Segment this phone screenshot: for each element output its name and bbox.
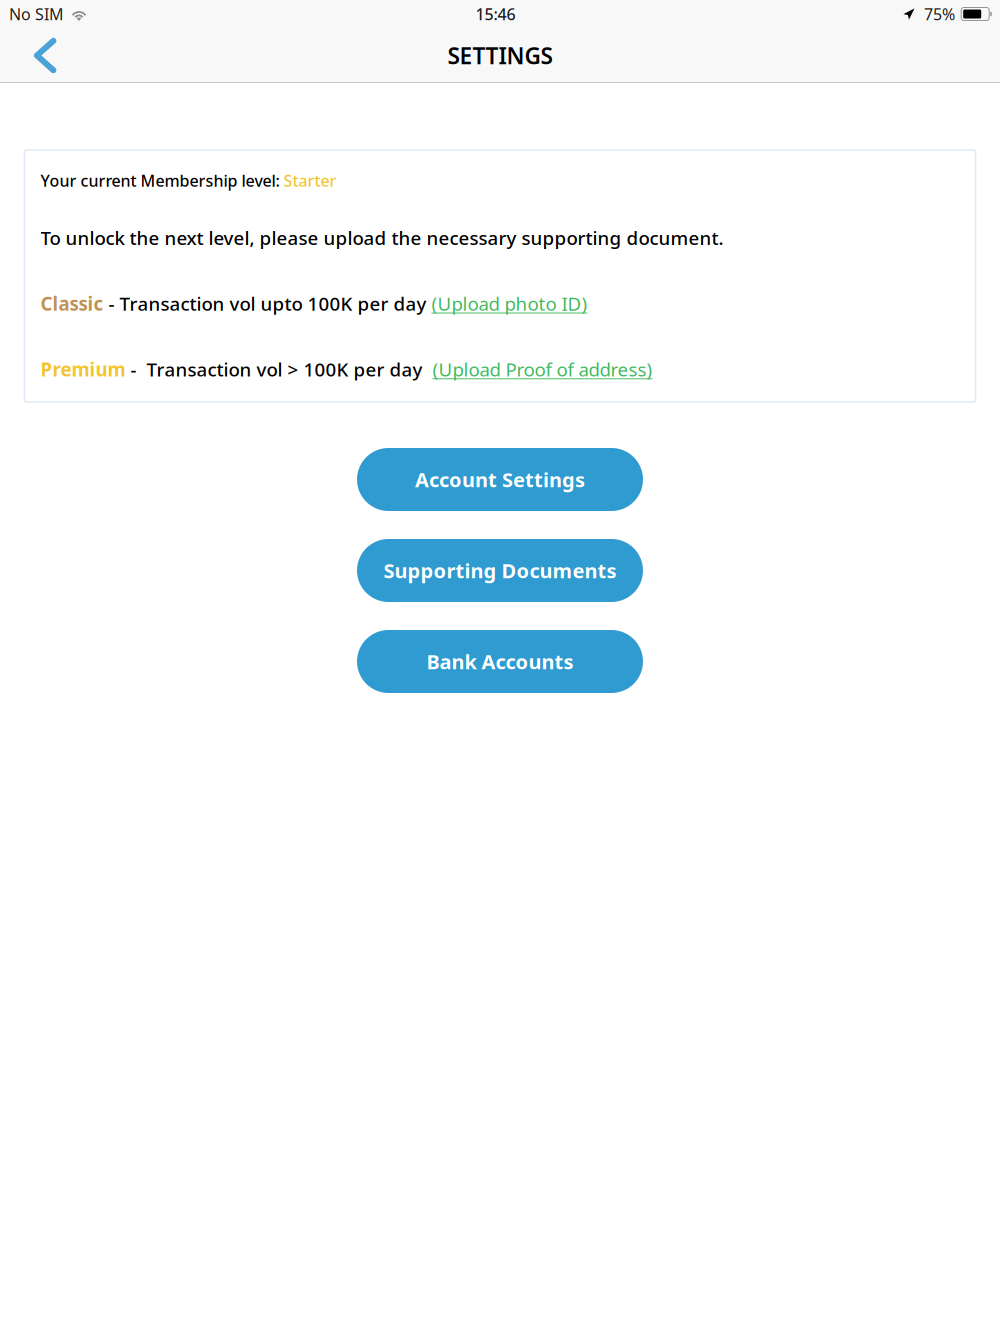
button[interactable]: (Upload photo ID) [431, 291, 587, 316]
staticText: SETTINGS [447, 40, 552, 70]
staticText: 75% [924, 3, 955, 25]
staticText: Bank Accounts [426, 648, 573, 675]
staticText: Premium [40, 357, 125, 382]
button[interactable]: Supporting Documents [357, 539, 643, 602]
staticText: Supporting Documents [383, 557, 616, 584]
staticText: - Transaction vol > 100K per day [125, 357, 432, 382]
staticText: (Upload photo ID) [431, 291, 587, 316]
button[interactable]: Back [0, 30, 78, 81]
staticText: Account Settings [415, 466, 585, 493]
staticText: Classic [40, 291, 103, 316]
staticText: (Upload Proof of address) [432, 357, 652, 382]
button[interactable]: Account Settings [357, 448, 643, 511]
staticText: Your current Membership level: [40, 170, 283, 191]
staticText: - Transaction vol upto 100K per day [103, 291, 431, 316]
button[interactable]: Bank Accounts [357, 630, 643, 693]
button[interactable]: (Upload Proof of address) [432, 357, 652, 382]
staticText: Starter [283, 170, 336, 191]
staticText: 15:46 [475, 3, 515, 25]
staticText: No SIM [9, 3, 64, 25]
staticText: To unlock the next level, please upload … [40, 225, 723, 250]
